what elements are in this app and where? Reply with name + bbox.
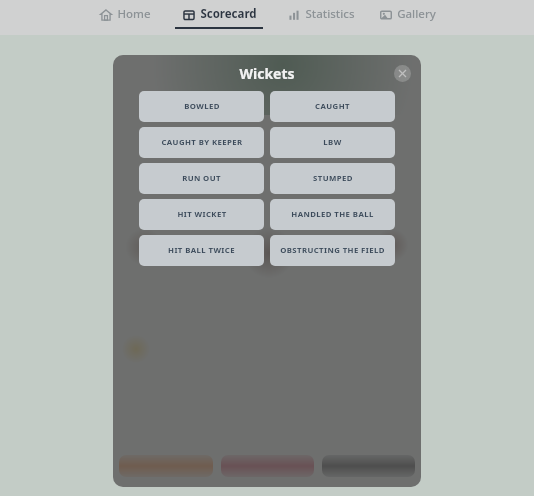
staticText: Statistics	[305, 6, 355, 22]
staticText: Scorecard	[200, 6, 257, 22]
button[interactable]: CAUGHT BY KEEPER	[139, 127, 264, 158]
button[interactable]: STUMPED	[270, 163, 395, 194]
button[interactable]: CAUGHT	[270, 91, 395, 122]
button[interactable]: BOWLED	[139, 91, 264, 122]
staticText: CAUGHT BY KEEPER	[161, 137, 243, 148]
staticText: RUN OUT	[182, 173, 221, 184]
button[interactable]: HIT WICKET	[139, 199, 264, 230]
button[interactable]: RUN OUT	[139, 163, 264, 194]
staticText: HIT WICKET	[177, 209, 227, 220]
staticText: BOWLED	[184, 101, 220, 112]
staticText: HIT BALL TWICE	[168, 245, 235, 256]
button[interactable]: Home	[97, 6, 153, 29]
staticText: Gallery	[397, 6, 436, 22]
staticText: CAUGHT	[315, 101, 350, 112]
button[interactable]: HIT BALL TWICE	[139, 235, 264, 266]
button[interactable]: HANDLED THE BALL	[270, 199, 395, 230]
staticText: HANDLED THE BALL	[291, 209, 374, 220]
button[interactable]: Statistics	[285, 6, 357, 29]
staticText: LBW	[323, 137, 342, 148]
button[interactable]: LBW	[270, 127, 395, 158]
staticText: STUMPED	[313, 173, 353, 184]
button[interactable]: OBSTRUCTING THE FIELD	[270, 235, 395, 266]
staticText: Wickets	[239, 64, 295, 83]
button[interactable]: Close	[394, 65, 411, 82]
button[interactable]: Scorecard	[173, 6, 265, 29]
button[interactable]: Gallery	[377, 6, 438, 29]
staticText: OBSTRUCTING THE FIELD	[280, 245, 385, 256]
staticText: Home	[117, 6, 151, 22]
